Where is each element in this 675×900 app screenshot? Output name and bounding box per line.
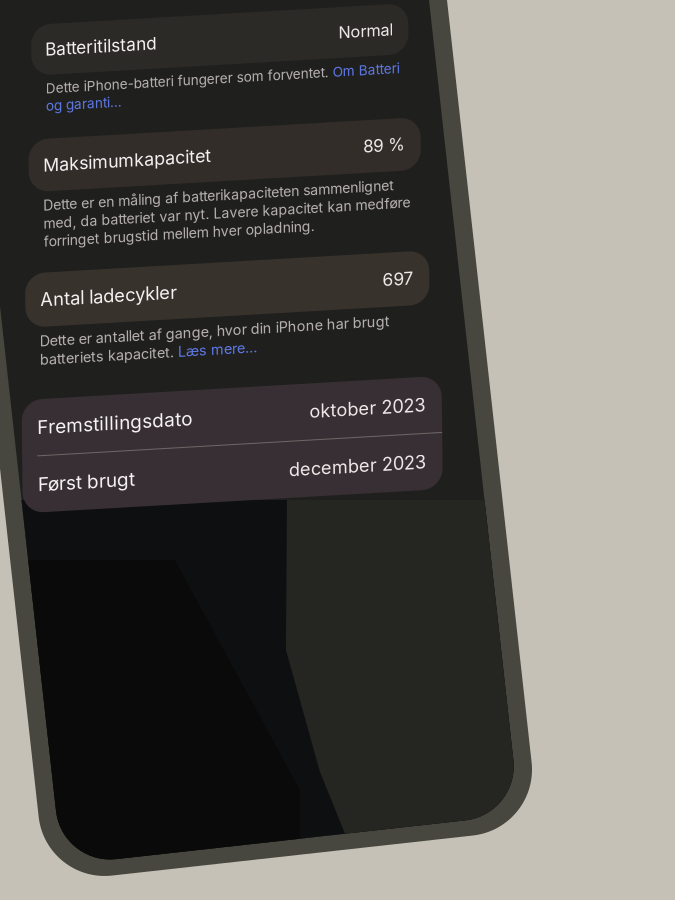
staticText: Dette er antallet af gange, hvor din iPh… xyxy=(5,308,355,325)
button[interactable]: Antal ladecykler xyxy=(0,248,395,302)
staticText: Fremstillingsdato xyxy=(1,391,156,414)
staticText: Dette iPhone-batteri fungerer som forven… xyxy=(14,56,301,73)
staticText: Maksimumkapacitet xyxy=(10,130,178,151)
staticText: batteriets kapacitet. xyxy=(5,326,143,344)
staticText: Læs mere… xyxy=(143,326,222,344)
button[interactable]: Først brugt xyxy=(0,431,406,487)
staticText: oktober 2023 xyxy=(273,391,389,413)
button[interactable]: Fremstillingsdato xyxy=(0,374,406,430)
staticText: Om Batteri xyxy=(301,56,368,73)
staticText: 89 % xyxy=(331,131,373,151)
button[interactable]: Maksimumkapacitet xyxy=(0,115,388,167)
staticText: Batteritilstand xyxy=(14,15,125,36)
staticText: december 2023 xyxy=(252,449,389,470)
button[interactable]: Batteritilstand xyxy=(0,0,377,51)
staticText: Dette er en måling af batterikapaciteten… xyxy=(10,173,361,189)
staticText: Antal ladecykler xyxy=(6,264,143,286)
staticText: og garanti… xyxy=(14,74,90,90)
staticText: med, da batteriet var nyt. Lavere kapaci… xyxy=(10,191,377,208)
staticText: Normal xyxy=(307,15,362,35)
staticText: forringet brugstid mellem hver opladning… xyxy=(10,209,281,226)
staticText: Først brugt xyxy=(1,448,98,471)
